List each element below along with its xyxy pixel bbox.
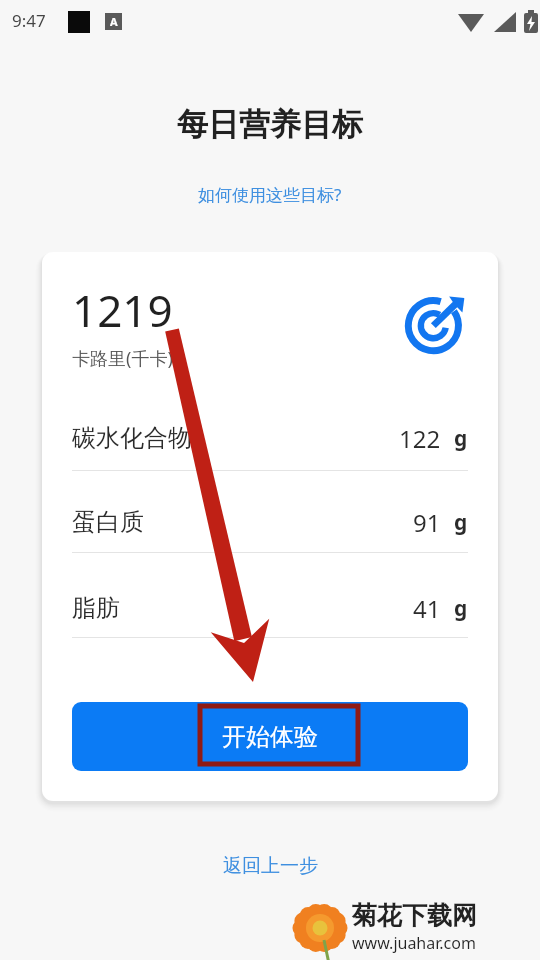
button[interactable]: 脂肪 [42,580,498,636]
staticText: 122 [399,422,441,455]
staticText: g [454,424,468,453]
button[interactable]: 返回上一步 [213,850,328,882]
staticText: 1219 [72,280,173,340]
staticText: 菊花下载网 [352,900,477,931]
staticText: A [110,14,118,29]
staticText: g [454,594,468,623]
button[interactable]: 碳水化合物 [42,410,498,466]
button[interactable]: 蛋白质 [42,494,498,550]
staticText: g [454,508,468,537]
staticText: 卡路里(千卡) [72,346,173,371]
button[interactable]: 目标 [398,285,474,361]
staticText: www.juahar.com [352,932,476,954]
staticText: 如何使用这些目标? [198,183,342,206]
staticText: 每日营养目标 [177,105,363,144]
button[interactable]: 如何使用这些目标? [190,180,350,209]
staticText: 9:47 [12,9,46,32]
staticText: 蛋白质 [72,507,144,537]
staticText: 开始体验 [222,722,318,752]
staticText: 碳水化合物 [72,423,192,453]
staticText: 91 [413,506,441,539]
button[interactable]: 开始体验 [72,702,468,771]
staticText: 返回上一步 [223,854,318,878]
staticText: 脂肪 [72,593,120,623]
staticText: 41 [413,592,441,625]
